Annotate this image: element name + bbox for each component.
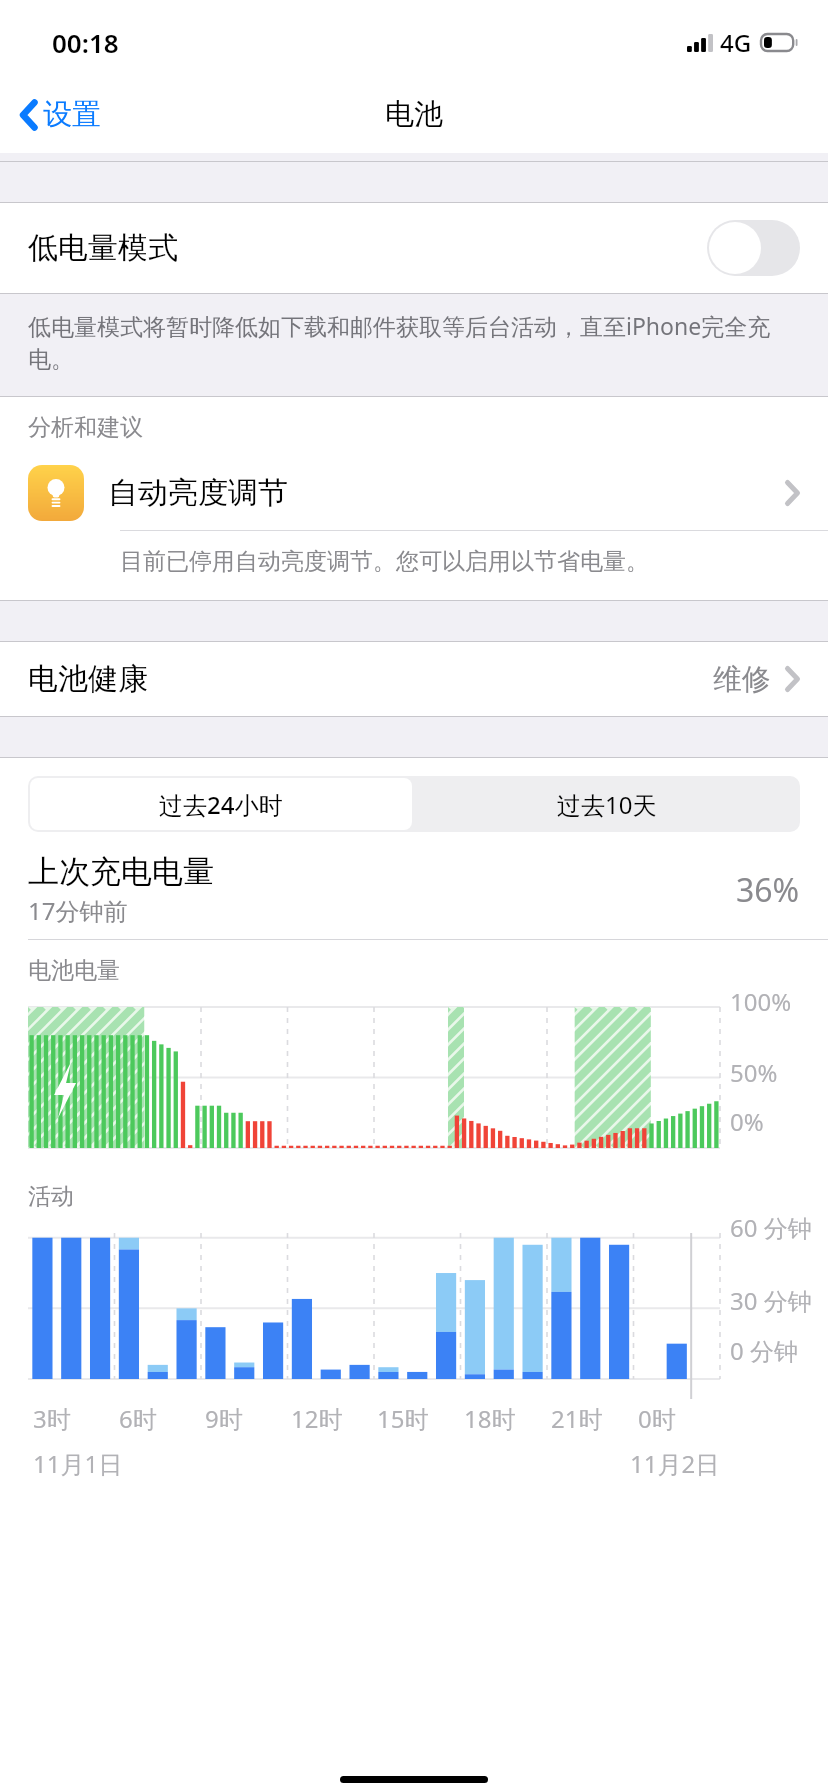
staticText: 21时 (551, 1402, 603, 1435)
staticText: 目前已停用自动亮度调节。您可以启用以节省电量。 (120, 547, 649, 576)
staticText: 上次充电电量 (28, 852, 214, 891)
staticText: 过去10天 (557, 788, 657, 821)
staticText: 12时 (291, 1402, 343, 1435)
button[interactable]: 低电量模式 (707, 220, 800, 276)
staticText: 0% (730, 1105, 764, 1138)
staticText: 电池电量 (28, 956, 120, 985)
staticText: 活动 (28, 1182, 74, 1211)
staticText: 设置 (43, 96, 101, 133)
staticText: 维修 (713, 661, 771, 698)
staticText: 0 分钟 (730, 1334, 798, 1367)
staticText: 低电量模式将暂时降低如下载和邮件获取等后台活动，直至iPhone完全充电。 (28, 310, 782, 374)
button[interactable]: 低电量模式 (0, 203, 828, 293)
staticText: 17分钟前 (28, 894, 128, 927)
staticText: 电池健康 (28, 660, 148, 698)
button[interactable]: 自动亮度调节 (0, 456, 828, 530)
staticText: 分析和建议 (28, 413, 143, 442)
other: 详情 (785, 480, 800, 506)
staticText: 15时 (377, 1402, 429, 1435)
button[interactable]: 过去24小时 (30, 778, 412, 830)
button[interactable]: 电池健康 (0, 642, 828, 716)
staticText: 0时 (638, 1402, 676, 1435)
staticText: 60 分钟 (730, 1211, 812, 1244)
button[interactable]: 过去10天 (414, 776, 800, 832)
staticText: 30 分钟 (730, 1284, 812, 1317)
staticText: 4G (720, 26, 752, 59)
other: 详情 (785, 666, 800, 692)
staticText: 低电量模式 (28, 229, 178, 267)
staticText: 18时 (464, 1402, 516, 1435)
staticText: 100% (730, 985, 792, 1018)
staticText: 36% (736, 868, 800, 912)
staticText: 6时 (119, 1402, 157, 1435)
staticText: 过去24小时 (159, 788, 283, 821)
staticText: 00:18 (52, 25, 119, 60)
staticText: 11月2日 (630, 1447, 720, 1480)
button[interactable]: 设置 (0, 86, 115, 143)
staticText: 50% (730, 1056, 778, 1089)
staticText: 9时 (205, 1402, 243, 1435)
staticText: 电池 (385, 96, 443, 133)
staticText: 11月1日 (33, 1447, 123, 1480)
staticText: 3时 (33, 1402, 71, 1435)
staticText: 自动亮度调节 (108, 474, 288, 512)
